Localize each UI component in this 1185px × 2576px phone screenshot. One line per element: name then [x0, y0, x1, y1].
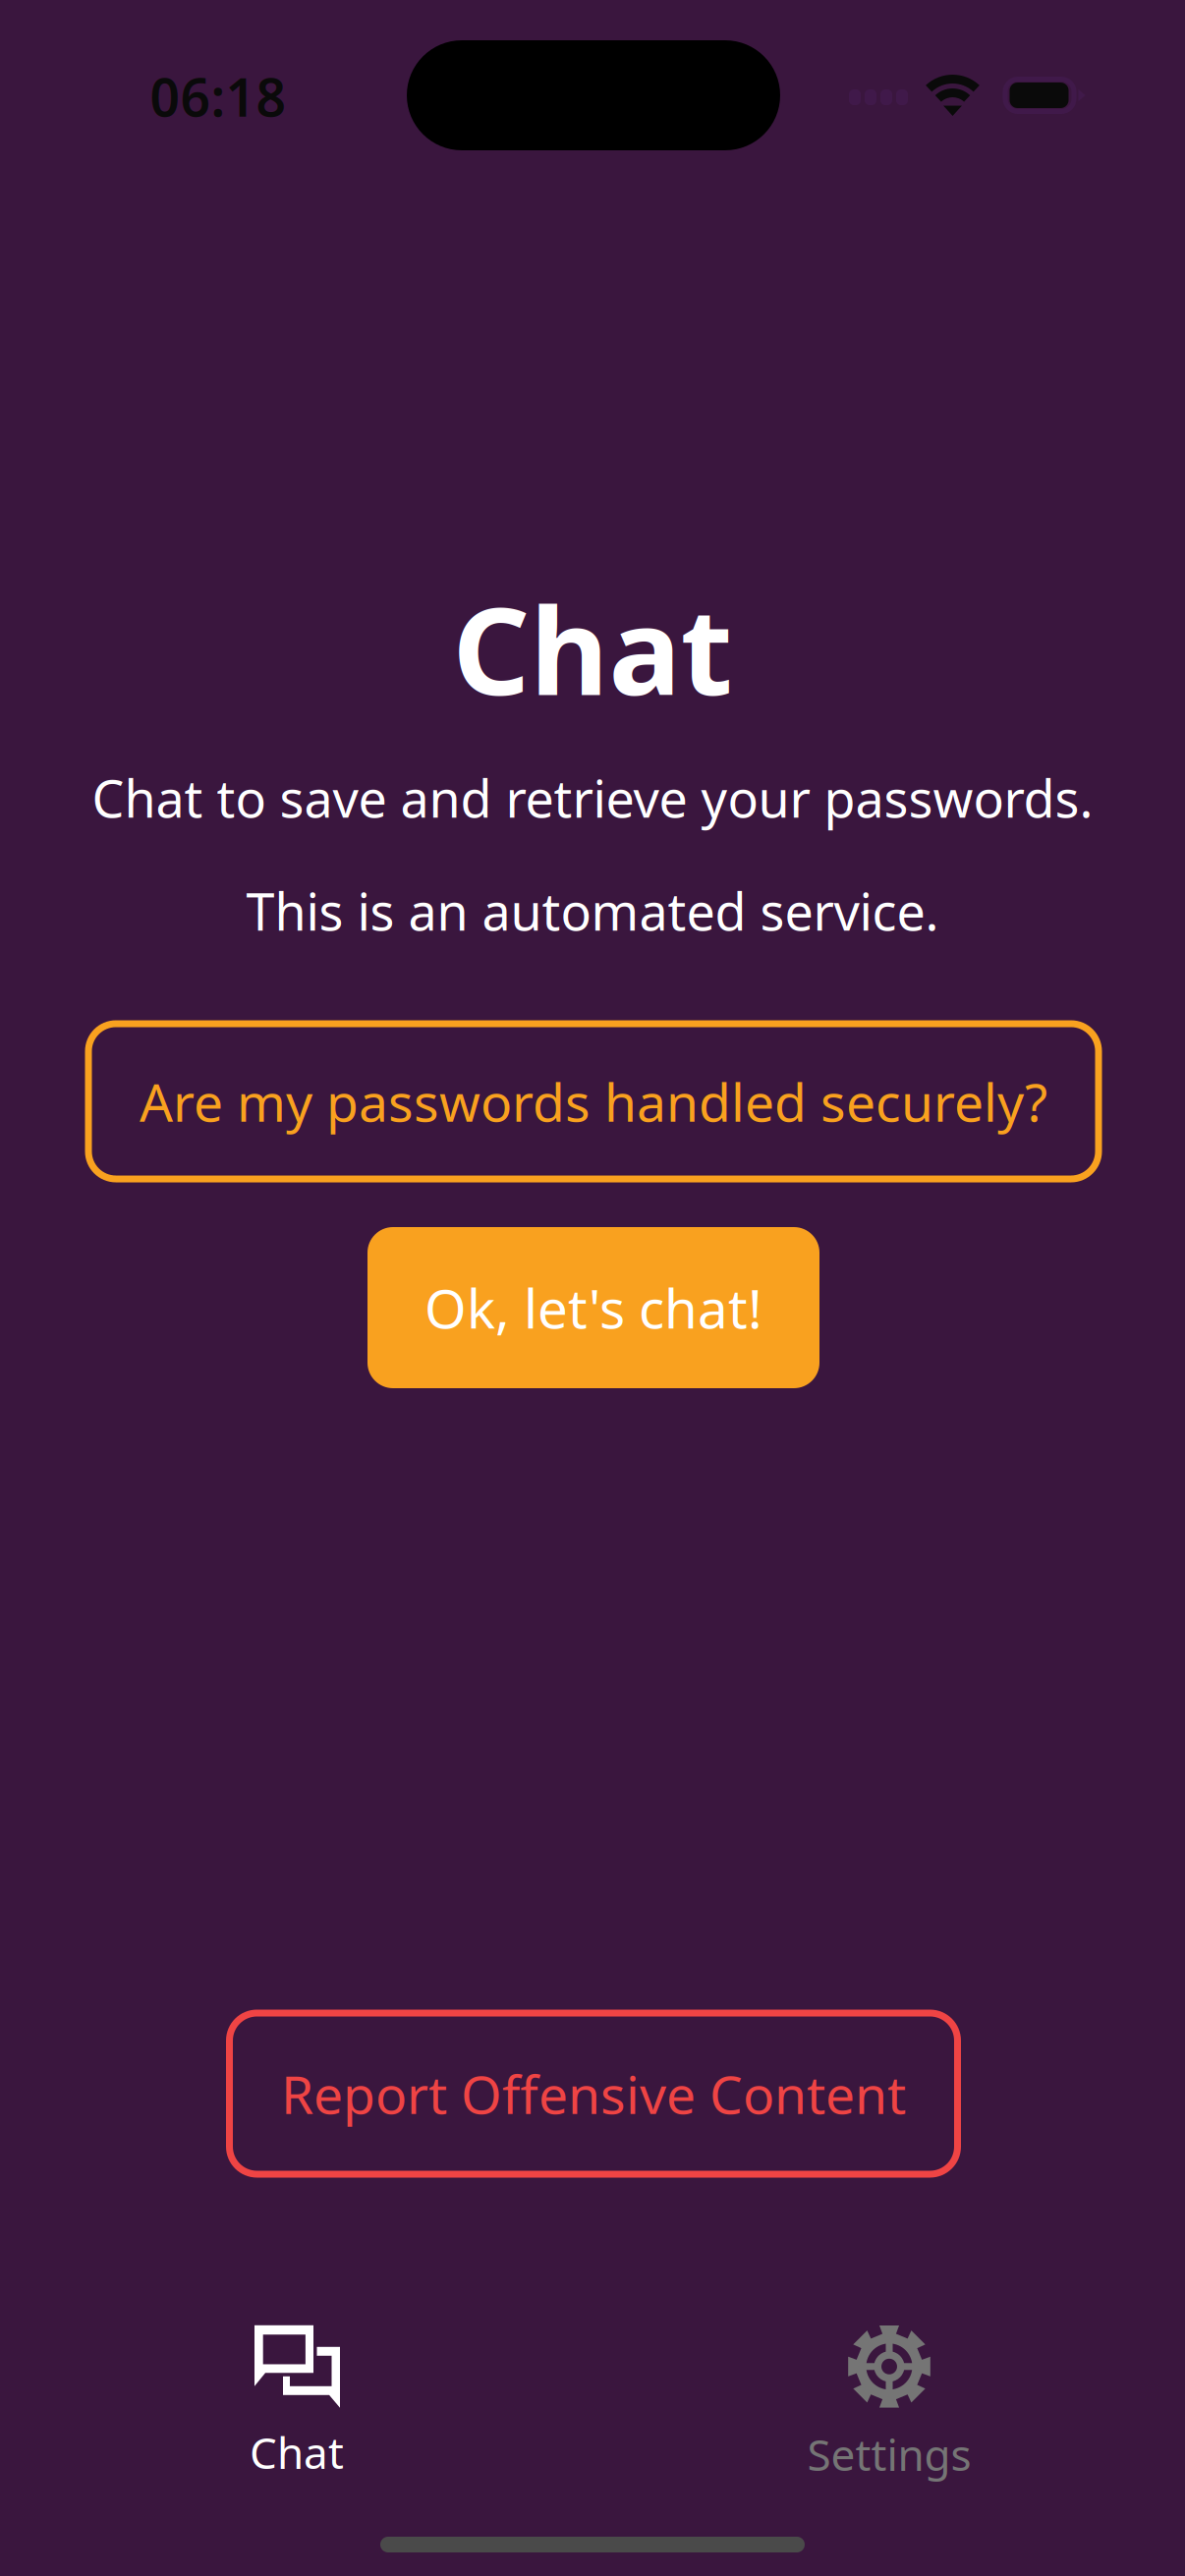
button[interactable]: Are my passwords handled securely?	[85, 1020, 1102, 1182]
button[interactable]: Chat	[0, 2307, 593, 2499]
button[interactable]: Ok, let's chat!	[367, 1227, 819, 1388]
staticText: Report Offensive Content	[281, 2059, 906, 2128]
staticText: Are my passwords handled securely?	[140, 1067, 1047, 1136]
staticText: This is an automated service.	[246, 877, 939, 945]
staticText: 06:18	[150, 62, 286, 131]
button[interactable]: Report Offensive Content	[226, 2010, 961, 2178]
staticText: Chat to save and retrieve your passwords…	[92, 764, 1093, 832]
staticText: Settings	[807, 2425, 971, 2483]
staticText: Chat	[250, 2424, 344, 2481]
button[interactable]: Settings	[593, 2307, 1185, 2499]
staticText: Chat	[452, 568, 733, 728]
staticText: Ok, let's chat!	[424, 1272, 762, 1343]
